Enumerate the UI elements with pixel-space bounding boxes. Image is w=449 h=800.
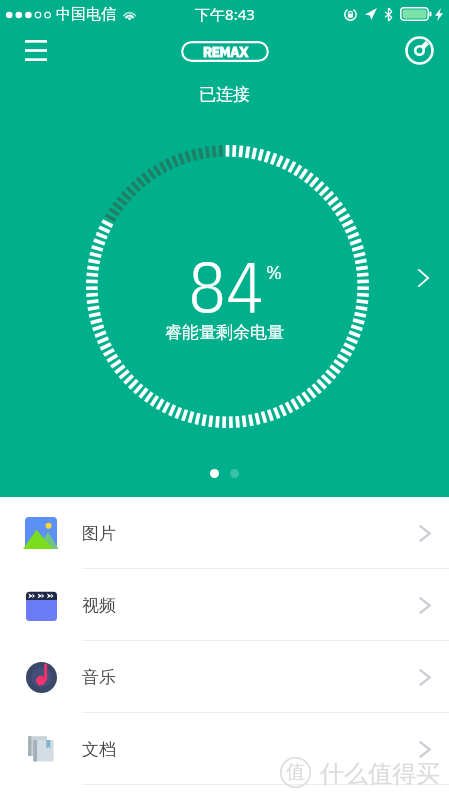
button[interactable]: 图片	[0, 497, 449, 569]
staticText: 文档	[82, 739, 116, 760]
button[interactable]: Next page	[400, 254, 446, 302]
button[interactable]: 音乐	[0, 641, 449, 713]
button[interactable]: REMAX	[181, 41, 269, 62]
staticText: 已连接	[199, 84, 250, 105]
staticText: 值	[286, 760, 305, 784]
button[interactable]: Device	[395, 26, 443, 74]
staticText: 84	[188, 240, 264, 331]
button[interactable]: 文档	[0, 713, 449, 785]
button[interactable]: Menu	[12, 26, 60, 74]
staticText: 图片	[82, 523, 116, 544]
staticText: 下午8:43	[195, 4, 255, 24]
staticText: 视频	[82, 595, 116, 616]
staticText: 中国电信	[56, 5, 116, 24]
staticText: %	[266, 260, 282, 285]
staticText: 音乐	[82, 667, 116, 688]
staticText: 睿能量剩余电量	[165, 322, 284, 343]
staticText: 什么值得买	[320, 759, 440, 789]
button[interactable]: 视频	[0, 569, 449, 641]
staticText: REMAX	[203, 42, 248, 62]
